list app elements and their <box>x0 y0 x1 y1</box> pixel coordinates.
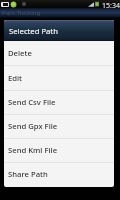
staticText: Selected Path <box>9 26 58 36</box>
staticText: 15:34 <box>102 1 120 9</box>
staticText: Delete <box>8 48 32 58</box>
staticText: Send Csv File <box>8 97 56 107</box>
button[interactable]: Share Path <box>4 163 114 187</box>
button[interactable]: Send Gpx File <box>4 115 114 139</box>
staticText: Send Gpx File <box>8 121 58 131</box>
staticText: Send Kml File <box>8 145 58 155</box>
button[interactable]: Edit <box>4 66 114 91</box>
button[interactable]: Send Csv File <box>4 91 114 115</box>
staticText: Path Tracking <box>2 9 41 17</box>
button[interactable]: Delete <box>4 41 114 66</box>
staticText: Edit <box>8 73 23 83</box>
button[interactable]: Send Kml File <box>4 139 114 163</box>
staticText: Share Path <box>8 169 48 179</box>
